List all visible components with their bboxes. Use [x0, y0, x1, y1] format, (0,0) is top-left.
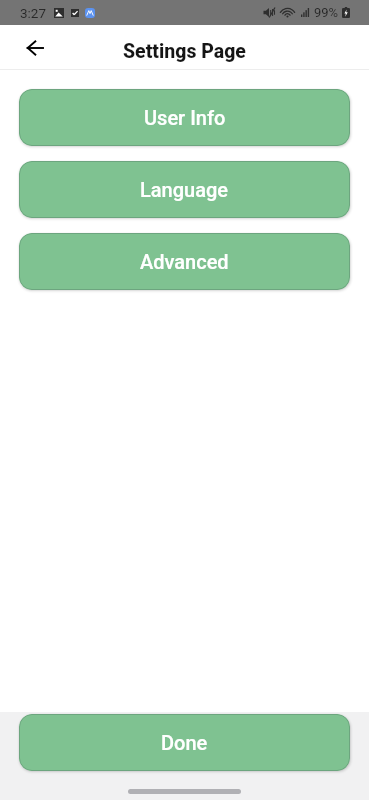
- staticText: Language: [140, 178, 229, 201]
- staticText: 3:27: [20, 5, 47, 21]
- staticText: User Info: [144, 106, 226, 129]
- button[interactable]: Done: [19, 714, 350, 771]
- staticText: Settings Page: [123, 40, 246, 63]
- button[interactable]: Language: [19, 161, 350, 218]
- staticText: 99%: [314, 5, 339, 20]
- button[interactable]: Back: [15, 28, 54, 67]
- button[interactable]: Advanced: [19, 233, 350, 290]
- button[interactable]: User Info: [19, 89, 350, 146]
- staticText: Advanced: [140, 250, 229, 273]
- staticText: Done: [161, 731, 208, 754]
